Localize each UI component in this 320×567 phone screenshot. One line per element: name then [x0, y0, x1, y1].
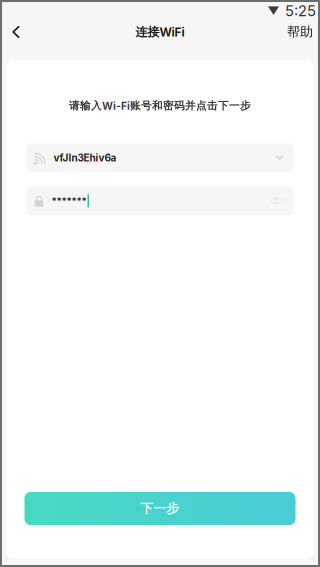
staticText: 帮助: [287, 24, 313, 40]
staticText: 连接WiFi: [135, 24, 184, 39]
button[interactable]: 下一步: [24, 492, 295, 525]
staticText: 下一步: [140, 500, 179, 516]
staticText: 请输入Wi-Fi账号和密码并点击下一步: [69, 99, 251, 112]
button[interactable]: vfJIn3Ehiv6a: [26, 143, 293, 172]
button[interactable]: Back: [2, 17, 30, 47]
staticText: 5:25: [285, 2, 316, 20]
button[interactable]: *******: [26, 186, 293, 215]
button[interactable]: 帮助: [287, 17, 318, 47]
staticText: *******: [51, 195, 86, 206]
staticText: vfJIn3Ehiv6a: [53, 152, 116, 164]
